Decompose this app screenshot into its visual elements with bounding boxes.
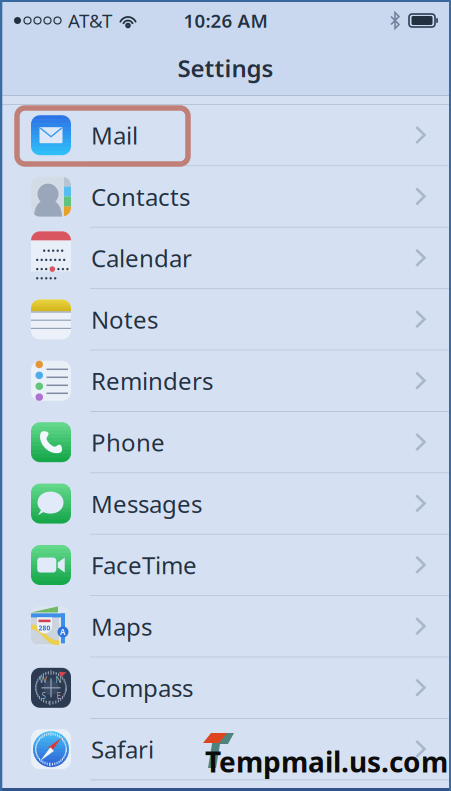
staticText: Contacts [91, 181, 190, 213]
staticText: E [56, 690, 60, 701]
staticText: Mail [91, 119, 138, 151]
button[interactable]: Messages [0, 473, 451, 535]
staticText: Safari [91, 733, 154, 765]
button[interactable]: FaceTime [0, 535, 451, 596]
button[interactable]: Notes [0, 289, 451, 351]
staticText: Messages [91, 488, 202, 520]
staticText: 280 [38, 623, 50, 632]
button[interactable]: Contacts [0, 166, 451, 228]
staticText: 10:26 AM [183, 8, 267, 33]
staticText: Notes [91, 303, 158, 335]
staticText: A [60, 627, 66, 637]
staticText: N [55, 674, 61, 685]
staticText: Reminders [91, 365, 213, 397]
staticText: Compass [91, 672, 193, 704]
staticText: Phone [91, 426, 165, 458]
staticText: AT&T [68, 8, 112, 33]
staticText: S [41, 690, 45, 701]
button[interactable]: Phone [0, 412, 451, 473]
button[interactable]: N [0, 658, 451, 719]
button[interactable]: Safari [0, 719, 451, 780]
button[interactable]: 280 [0, 596, 451, 658]
staticText: Maps [91, 610, 152, 642]
button[interactable]: Calendar [0, 228, 451, 289]
button[interactable]: Mail [0, 105, 451, 166]
staticText: Calendar [91, 242, 192, 274]
button[interactable]: Reminders [0, 351, 451, 412]
staticText: W [39, 674, 46, 685]
staticText: Tempmail.us.com [205, 743, 448, 780]
staticText: Settings [177, 52, 273, 84]
staticText: FaceTime [91, 549, 197, 581]
